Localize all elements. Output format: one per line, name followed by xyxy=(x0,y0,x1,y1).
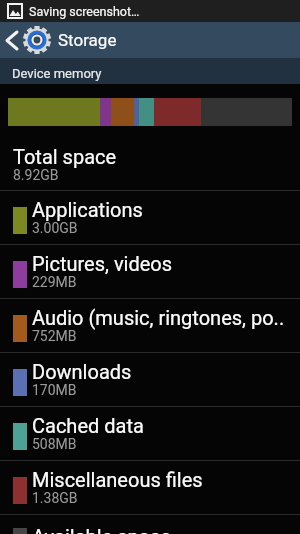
button[interactable]: Audio (music, ringtones, po.. xyxy=(0,299,300,353)
button[interactable]: Storage xyxy=(0,22,300,58)
staticText: 170MB xyxy=(32,382,77,398)
staticText: Total space xyxy=(13,145,117,168)
staticText: Miscellaneous files xyxy=(32,468,203,491)
button[interactable]: Pictures, videos xyxy=(0,245,300,299)
staticText: 229MB xyxy=(32,274,77,290)
staticText: Device memory xyxy=(12,66,102,81)
staticText: Cached data xyxy=(32,414,144,437)
button[interactable]: Cached data xyxy=(0,407,300,461)
button[interactable]: Miscellaneous files xyxy=(0,461,300,515)
staticText: Downloads xyxy=(32,360,132,383)
staticText: 752MB xyxy=(32,328,77,344)
staticText: 3.00GB xyxy=(32,220,78,236)
staticText: Available space xyxy=(32,525,171,534)
staticText: 8.92GB xyxy=(13,167,59,183)
staticText: 1.38GB xyxy=(32,490,78,506)
staticText: Audio (music, ringtones, po.. xyxy=(32,306,285,329)
staticText: 508MB xyxy=(32,436,77,452)
staticText: Pictures, videos xyxy=(32,252,173,275)
button[interactable]: Applications xyxy=(0,191,300,245)
button[interactable]: Total space xyxy=(0,140,300,191)
staticText: Applications xyxy=(32,198,143,221)
staticText: Saving screenshot… xyxy=(29,4,140,19)
staticText: Storage xyxy=(58,30,117,50)
button[interactable]: Available space xyxy=(0,515,300,534)
button[interactable]: Downloads xyxy=(0,353,300,407)
